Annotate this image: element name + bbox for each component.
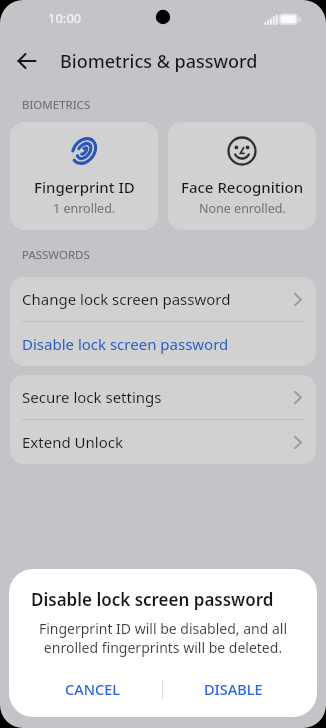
button[interactable]: DISABLE <box>163 667 303 711</box>
staticText: Secure lock settings <box>22 387 162 407</box>
staticText: DISABLE <box>204 679 263 699</box>
button[interactable]: Face Recognition <box>168 122 316 230</box>
staticText: Change lock screen password <box>22 289 231 309</box>
staticText: Disable lock screen password <box>31 588 274 611</box>
staticText: Fingerprint ID will be disabled, and all… <box>25 619 301 657</box>
staticText: CANCEL <box>65 679 120 699</box>
staticText: Fingerprint ID <box>34 177 135 197</box>
staticText: 1 enrolled. <box>53 200 116 217</box>
button[interactable]: Disable lock screen password <box>10 322 316 366</box>
button[interactable]: Fingerprint ID <box>10 122 158 230</box>
button[interactable]: Extend Unlock <box>10 420 316 464</box>
staticText: None enrolled. <box>199 200 286 217</box>
staticText: 10:00 <box>48 9 82 27</box>
staticText: PASSWORDS <box>22 247 90 263</box>
button[interactable]: CANCEL <box>23 667 162 711</box>
staticText: Face Recognition <box>181 177 304 197</box>
button[interactable] <box>16 50 38 72</box>
staticText: Extend Unlock <box>22 432 123 452</box>
button[interactable]: Change lock screen password <box>10 277 316 321</box>
staticText: BIOMETRICS <box>22 97 91 113</box>
staticText: Biometrics & password <box>60 49 258 74</box>
button[interactable]: Secure lock settings <box>10 375 316 419</box>
staticText: Disable lock screen password <box>22 334 229 354</box>
